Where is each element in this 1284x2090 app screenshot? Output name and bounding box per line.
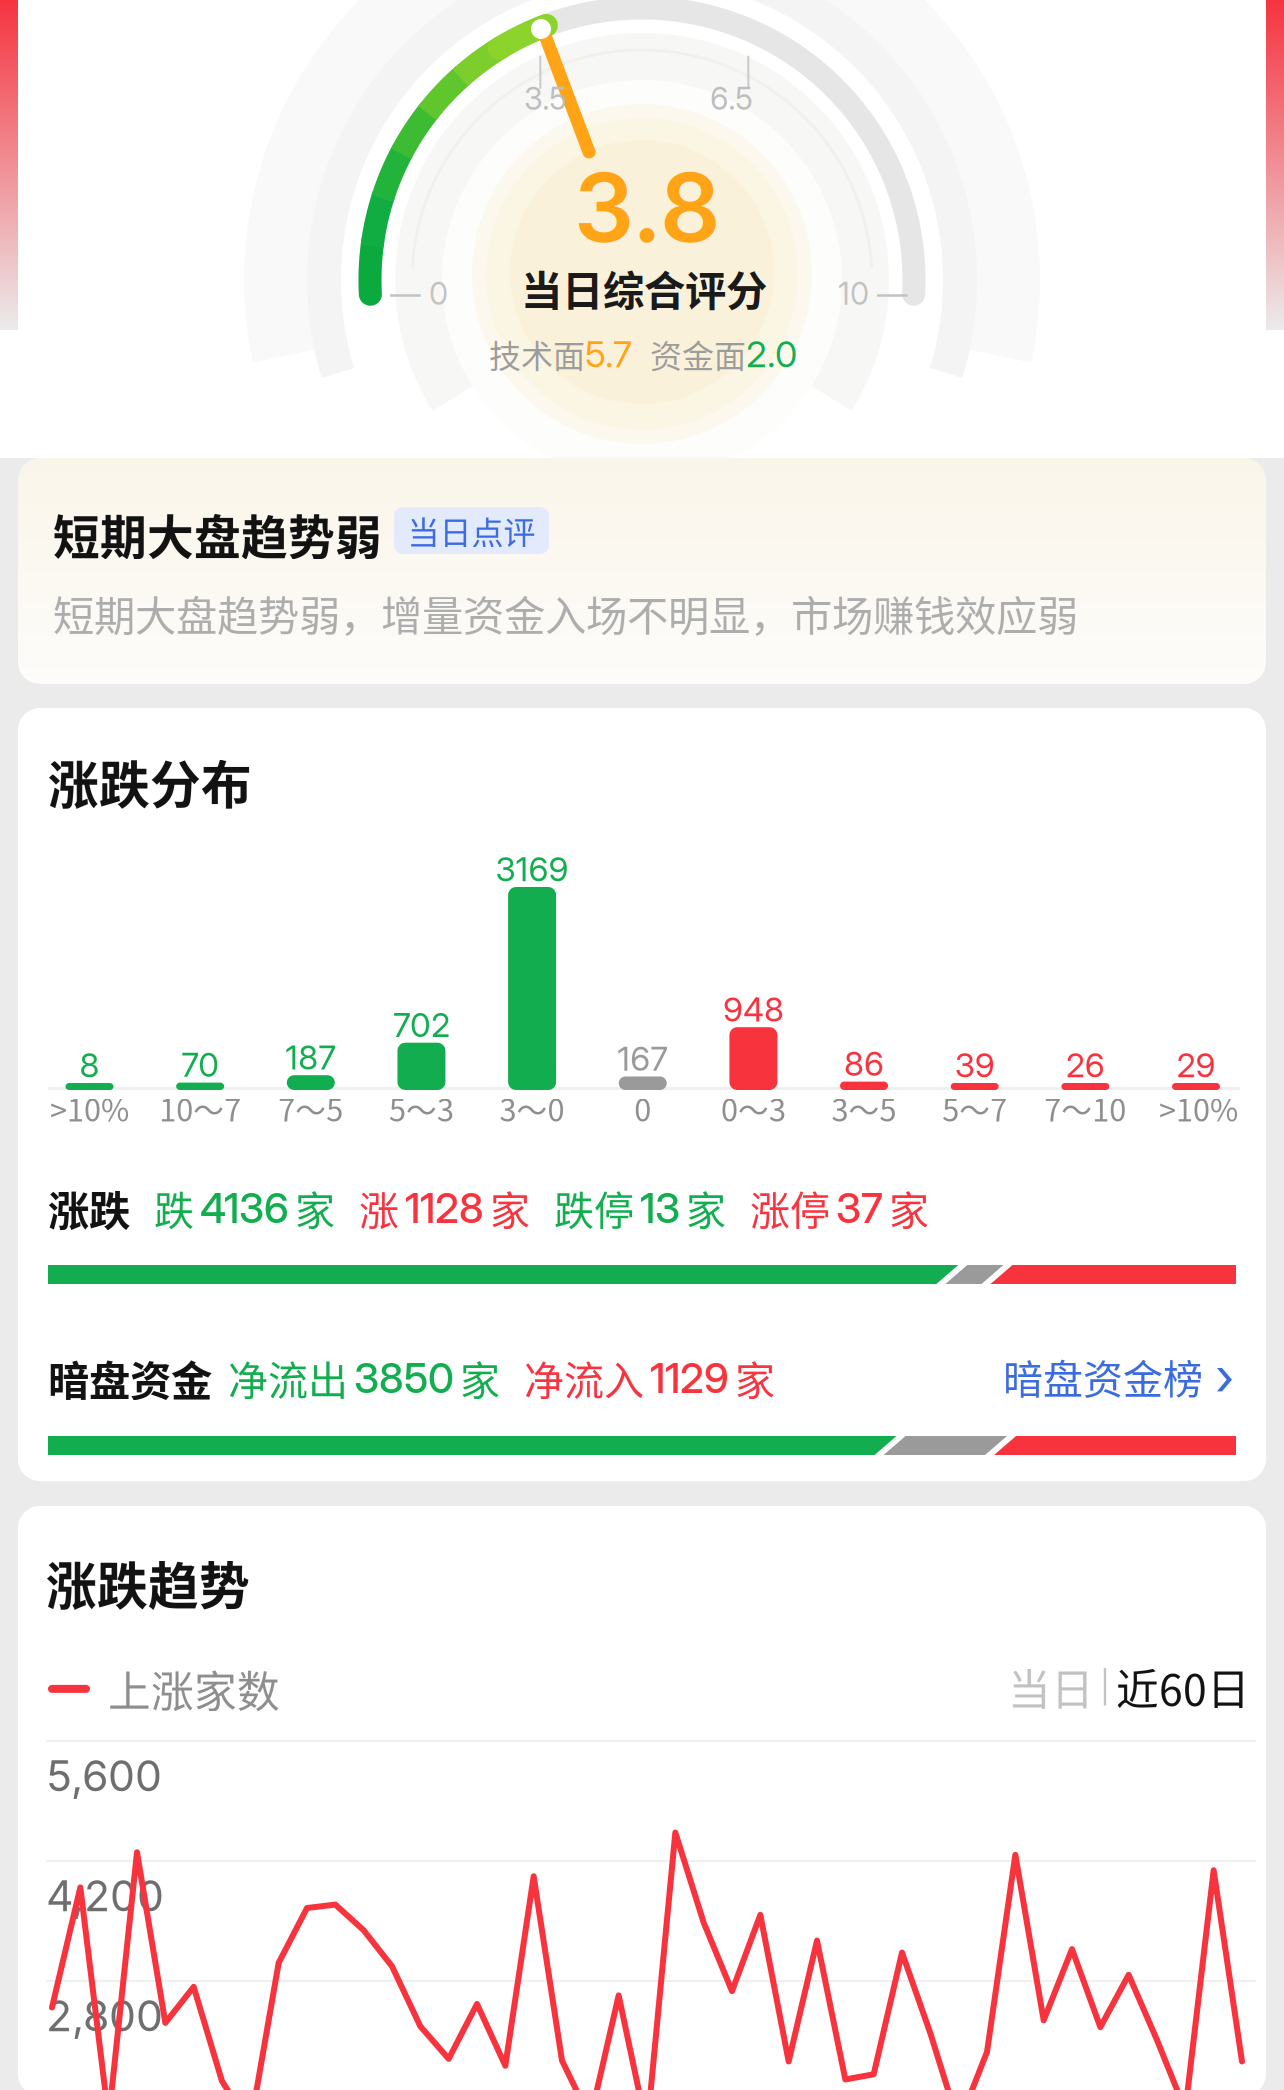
- staticText: 2,800: [46, 1990, 163, 2042]
- staticText: 3～5: [832, 1086, 897, 1130]
- staticText: 5～3: [389, 1086, 454, 1130]
- staticText: 13: [640, 1183, 680, 1233]
- button[interactable]: 暗盘资金榜: [1003, 1346, 1234, 1407]
- staticText: 当日: [1008, 1656, 1094, 1718]
- staticText: 家: [735, 1349, 775, 1407]
- staticText: 跌: [154, 1179, 194, 1237]
- staticText: 702: [393, 1005, 450, 1045]
- staticText: 跌停: [554, 1179, 634, 1237]
- staticText: 3850: [354, 1353, 454, 1403]
- staticText: 3～0: [500, 1086, 565, 1130]
- staticText: 948: [723, 989, 784, 1029]
- staticText: 当日点评: [407, 507, 535, 554]
- staticText: 70: [181, 1045, 219, 1085]
- staticText: 短期大盘趋势弱: [53, 500, 382, 568]
- staticText: 3.8: [574, 150, 721, 264]
- staticText: 7～5: [278, 1086, 343, 1130]
- staticText: 资金面: [650, 331, 746, 377]
- staticText: 10～7: [159, 1086, 241, 1130]
- staticText: 29: [1176, 1045, 1215, 1085]
- staticText: 187: [285, 1037, 336, 1077]
- staticText: |: [1100, 1667, 1110, 1706]
- staticText: 暗盘资金榜: [1003, 1348, 1203, 1406]
- staticText: |: [536, 57, 545, 89]
- staticText: 6.5: [710, 80, 753, 117]
- staticText: |: [744, 57, 753, 89]
- staticText: 1129: [650, 1353, 729, 1403]
- staticText: 4136: [200, 1183, 289, 1233]
- staticText: 短期大盘趋势弱，增量资金入场不明显，市场赚钱效应弱: [53, 583, 1078, 643]
- staticText: 3169: [496, 849, 569, 889]
- staticText: 8: [79, 1045, 99, 1085]
- staticText: 技术面: [489, 331, 585, 377]
- staticText: 家: [295, 1179, 335, 1237]
- staticText: 家: [490, 1179, 530, 1237]
- staticText: 37: [836, 1183, 883, 1233]
- staticText: 涨停: [750, 1179, 830, 1237]
- staticText: 家: [460, 1349, 500, 1407]
- staticText: 上涨家数: [108, 1658, 280, 1720]
- staticText: 家: [686, 1179, 726, 1237]
- staticText: 26: [1066, 1045, 1105, 1085]
- staticText: 家: [889, 1179, 929, 1237]
- staticText: — 0: [390, 275, 448, 312]
- staticText: 7～10: [1044, 1086, 1126, 1130]
- staticText: ›: [1215, 1346, 1234, 1407]
- staticText: 0～3: [721, 1086, 786, 1130]
- button[interactable]: 近60日: [1116, 1656, 1250, 1718]
- staticText: 3.5: [524, 80, 567, 117]
- staticText: >10%: [1159, 1086, 1238, 1130]
- staticText: 涨跌: [48, 1178, 130, 1238]
- staticText: 10 —: [838, 275, 908, 312]
- staticText: 2.0: [746, 332, 797, 376]
- staticText: 39: [955, 1045, 995, 1085]
- staticText: 167: [617, 1038, 668, 1079]
- staticText: >10%: [50, 1086, 129, 1130]
- staticText: 1128: [405, 1183, 484, 1233]
- staticText: 5～7: [942, 1086, 1007, 1130]
- staticText: 净流出: [228, 1349, 348, 1407]
- staticText: 当日综合评分: [521, 258, 767, 318]
- staticText: 暗盘资金: [48, 1348, 212, 1408]
- staticText: 近60日: [1116, 1656, 1250, 1718]
- staticText: 86: [844, 1044, 884, 1084]
- staticText: 涨跌分布: [48, 745, 252, 818]
- button[interactable]: 当日: [1008, 1656, 1094, 1718]
- staticText: 5.7: [585, 332, 632, 376]
- staticText: 0: [634, 1086, 651, 1130]
- staticText: 5,600: [46, 1750, 162, 1802]
- staticText: 4,200: [46, 1870, 164, 1922]
- staticText: 净流入: [524, 1349, 644, 1407]
- staticText: 涨跌趋势: [46, 1546, 250, 1619]
- staticText: 涨: [359, 1179, 399, 1237]
